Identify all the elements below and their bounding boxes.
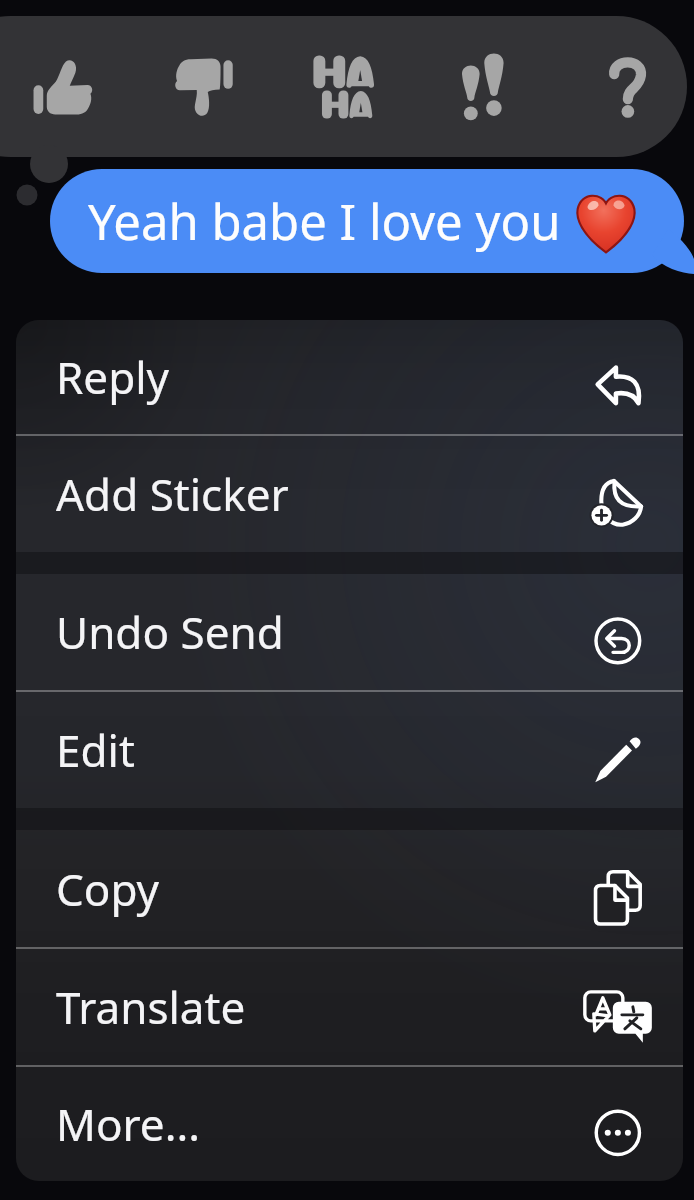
button[interactable]: Thumbs down <box>144 16 264 157</box>
staticText: Copy <box>56 859 160 919</box>
staticText: Add Sticker <box>56 464 289 524</box>
staticText: Reply <box>56 347 170 407</box>
button[interactable]: Reply <box>16 320 683 434</box>
button[interactable]: Translate <box>16 949 683 1065</box>
staticText: More... <box>56 1094 201 1154</box>
staticText: Translate <box>56 977 246 1037</box>
button[interactable]: Copy <box>16 830 683 947</box>
staticText: Undo Send <box>56 602 284 662</box>
button[interactable]: Thumbs up <box>3 16 123 157</box>
button[interactable]: Add Sticker <box>16 436 683 552</box>
button[interactable]: Question <box>560 16 680 157</box>
button[interactable]: More... <box>16 1067 683 1181</box>
button[interactable]: Haha <box>284 16 404 157</box>
staticText: Yeah babe I love you <box>88 188 561 255</box>
staticText: Edit <box>56 720 135 780</box>
button[interactable]: Exclamation <box>423 16 543 157</box>
button[interactable]: Undo Send <box>16 574 683 690</box>
button[interactable]: Yeah babe I love you <box>50 169 681 273</box>
button[interactable]: Edit <box>16 692 683 808</box>
